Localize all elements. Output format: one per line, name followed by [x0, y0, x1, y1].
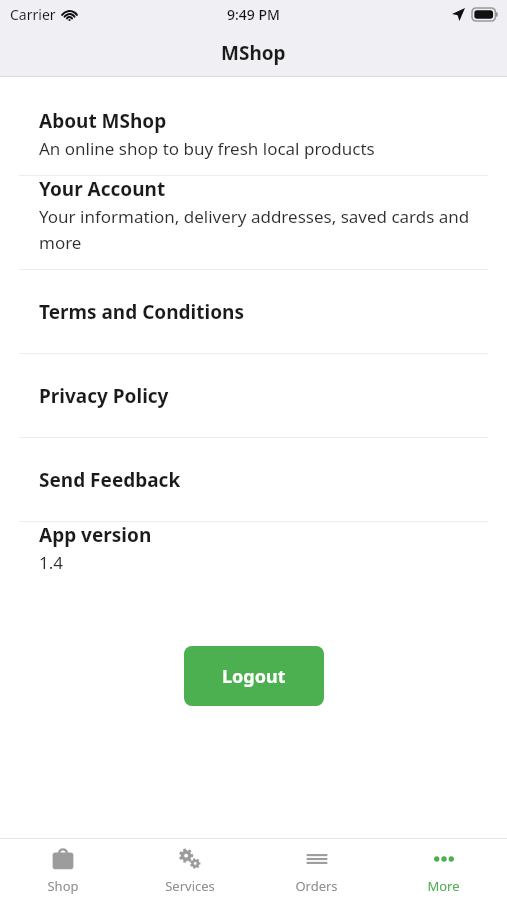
staticText: Shop: [47, 877, 79, 895]
button[interactable]: Your Account: [0, 176, 507, 269]
staticText: App version: [39, 522, 152, 548]
staticText: Privacy Policy: [39, 383, 473, 409]
button[interactable]: App version: [0, 522, 507, 589]
button[interactable]: Services: [126, 839, 253, 900]
staticText: MShop: [221, 40, 286, 66]
staticText: Send Feedback: [39, 467, 473, 493]
button[interactable]: Terms and Conditions: [0, 270, 507, 353]
button[interactable]: Privacy Policy: [0, 354, 507, 437]
staticText: An online shop to buy fresh local produc…: [39, 137, 375, 160]
button[interactable]: About MShop: [0, 108, 507, 175]
staticText: About MShop: [39, 108, 167, 134]
staticText: 1.4: [39, 551, 64, 574]
staticText: Orders: [295, 877, 338, 895]
button[interactable]: Logout: [184, 646, 324, 706]
button[interactable]: More: [380, 839, 507, 900]
staticText: Logout: [222, 664, 286, 689]
button[interactable]: Shop: [0, 839, 126, 900]
staticText: Your information, delivery addresses, sa…: [39, 205, 473, 254]
button[interactable]: Send Feedback: [0, 438, 507, 521]
button[interactable]: Orders: [253, 839, 380, 900]
staticText: Services: [165, 877, 215, 895]
staticText: Your Account: [39, 176, 166, 202]
staticText: More: [427, 877, 460, 895]
staticText: 9:49 PM: [227, 5, 280, 24]
staticText: Terms and Conditions: [39, 299, 473, 325]
staticText: Carrier: [10, 5, 56, 24]
